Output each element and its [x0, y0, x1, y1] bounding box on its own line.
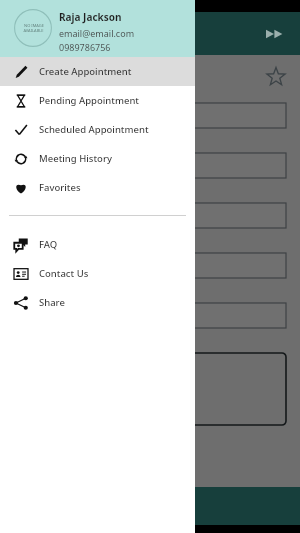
staticText: Meeting History [39, 152, 112, 165]
staticText: Pending Appointment [39, 94, 139, 107]
staticText: 0989786756 [59, 41, 111, 53]
staticText: email@email.com [59, 27, 135, 39]
button[interactable]: Share [0, 288, 195, 317]
button[interactable]: Scheduled Appointment [0, 115, 195, 144]
staticText: Favorites [39, 181, 81, 194]
button[interactable]: FAQ [0, 230, 195, 259]
staticText: Raja Jackson [59, 10, 122, 24]
button[interactable]: Meeting History [0, 144, 195, 173]
staticText: Share [39, 296, 65, 309]
staticText: Contact Us [39, 267, 89, 280]
staticText: Create Appointment [52, 25, 179, 43]
button[interactable]: Favorites [0, 173, 195, 202]
button[interactable]: Create Appointment [0, 57, 195, 86]
staticText: AVAILABLE [23, 28, 44, 33]
staticText: Create Appointment [39, 65, 132, 78]
staticText: Scheduled Appointment [39, 123, 149, 136]
staticText: FAQ [39, 238, 58, 251]
other: Next [266, 24, 286, 44]
button[interactable]: Contact Us [0, 259, 195, 288]
staticText: NO IMAGE [24, 23, 44, 28]
button[interactable]: Pending Appointment [0, 86, 195, 115]
